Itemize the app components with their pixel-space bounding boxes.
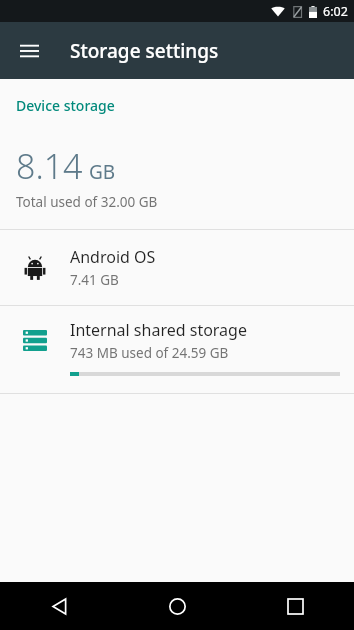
staticText: 743 MB used of 24.59 GB	[70, 344, 229, 362]
staticText: Android OS	[70, 246, 156, 268]
staticText: 6:02	[323, 3, 348, 20]
button[interactable]: Internal shared storage	[0, 306, 354, 393]
staticText: 7.41 GB	[70, 271, 119, 289]
staticText: Storage settings	[70, 38, 219, 64]
staticText: GB	[89, 159, 116, 185]
button[interactable]: Back	[0, 582, 118, 630]
staticText: Device storage	[16, 96, 115, 115]
staticText: Total used of 32.00 GB	[16, 193, 158, 211]
button[interactable]: Open navigation drawer	[8, 30, 50, 72]
button[interactable]: Android OS	[0, 230, 354, 305]
staticText: Internal shared storage	[70, 319, 247, 341]
button[interactable]: Home	[118, 582, 236, 630]
button[interactable]: Recent apps	[236, 582, 354, 630]
staticText: 8.14	[16, 143, 83, 189]
